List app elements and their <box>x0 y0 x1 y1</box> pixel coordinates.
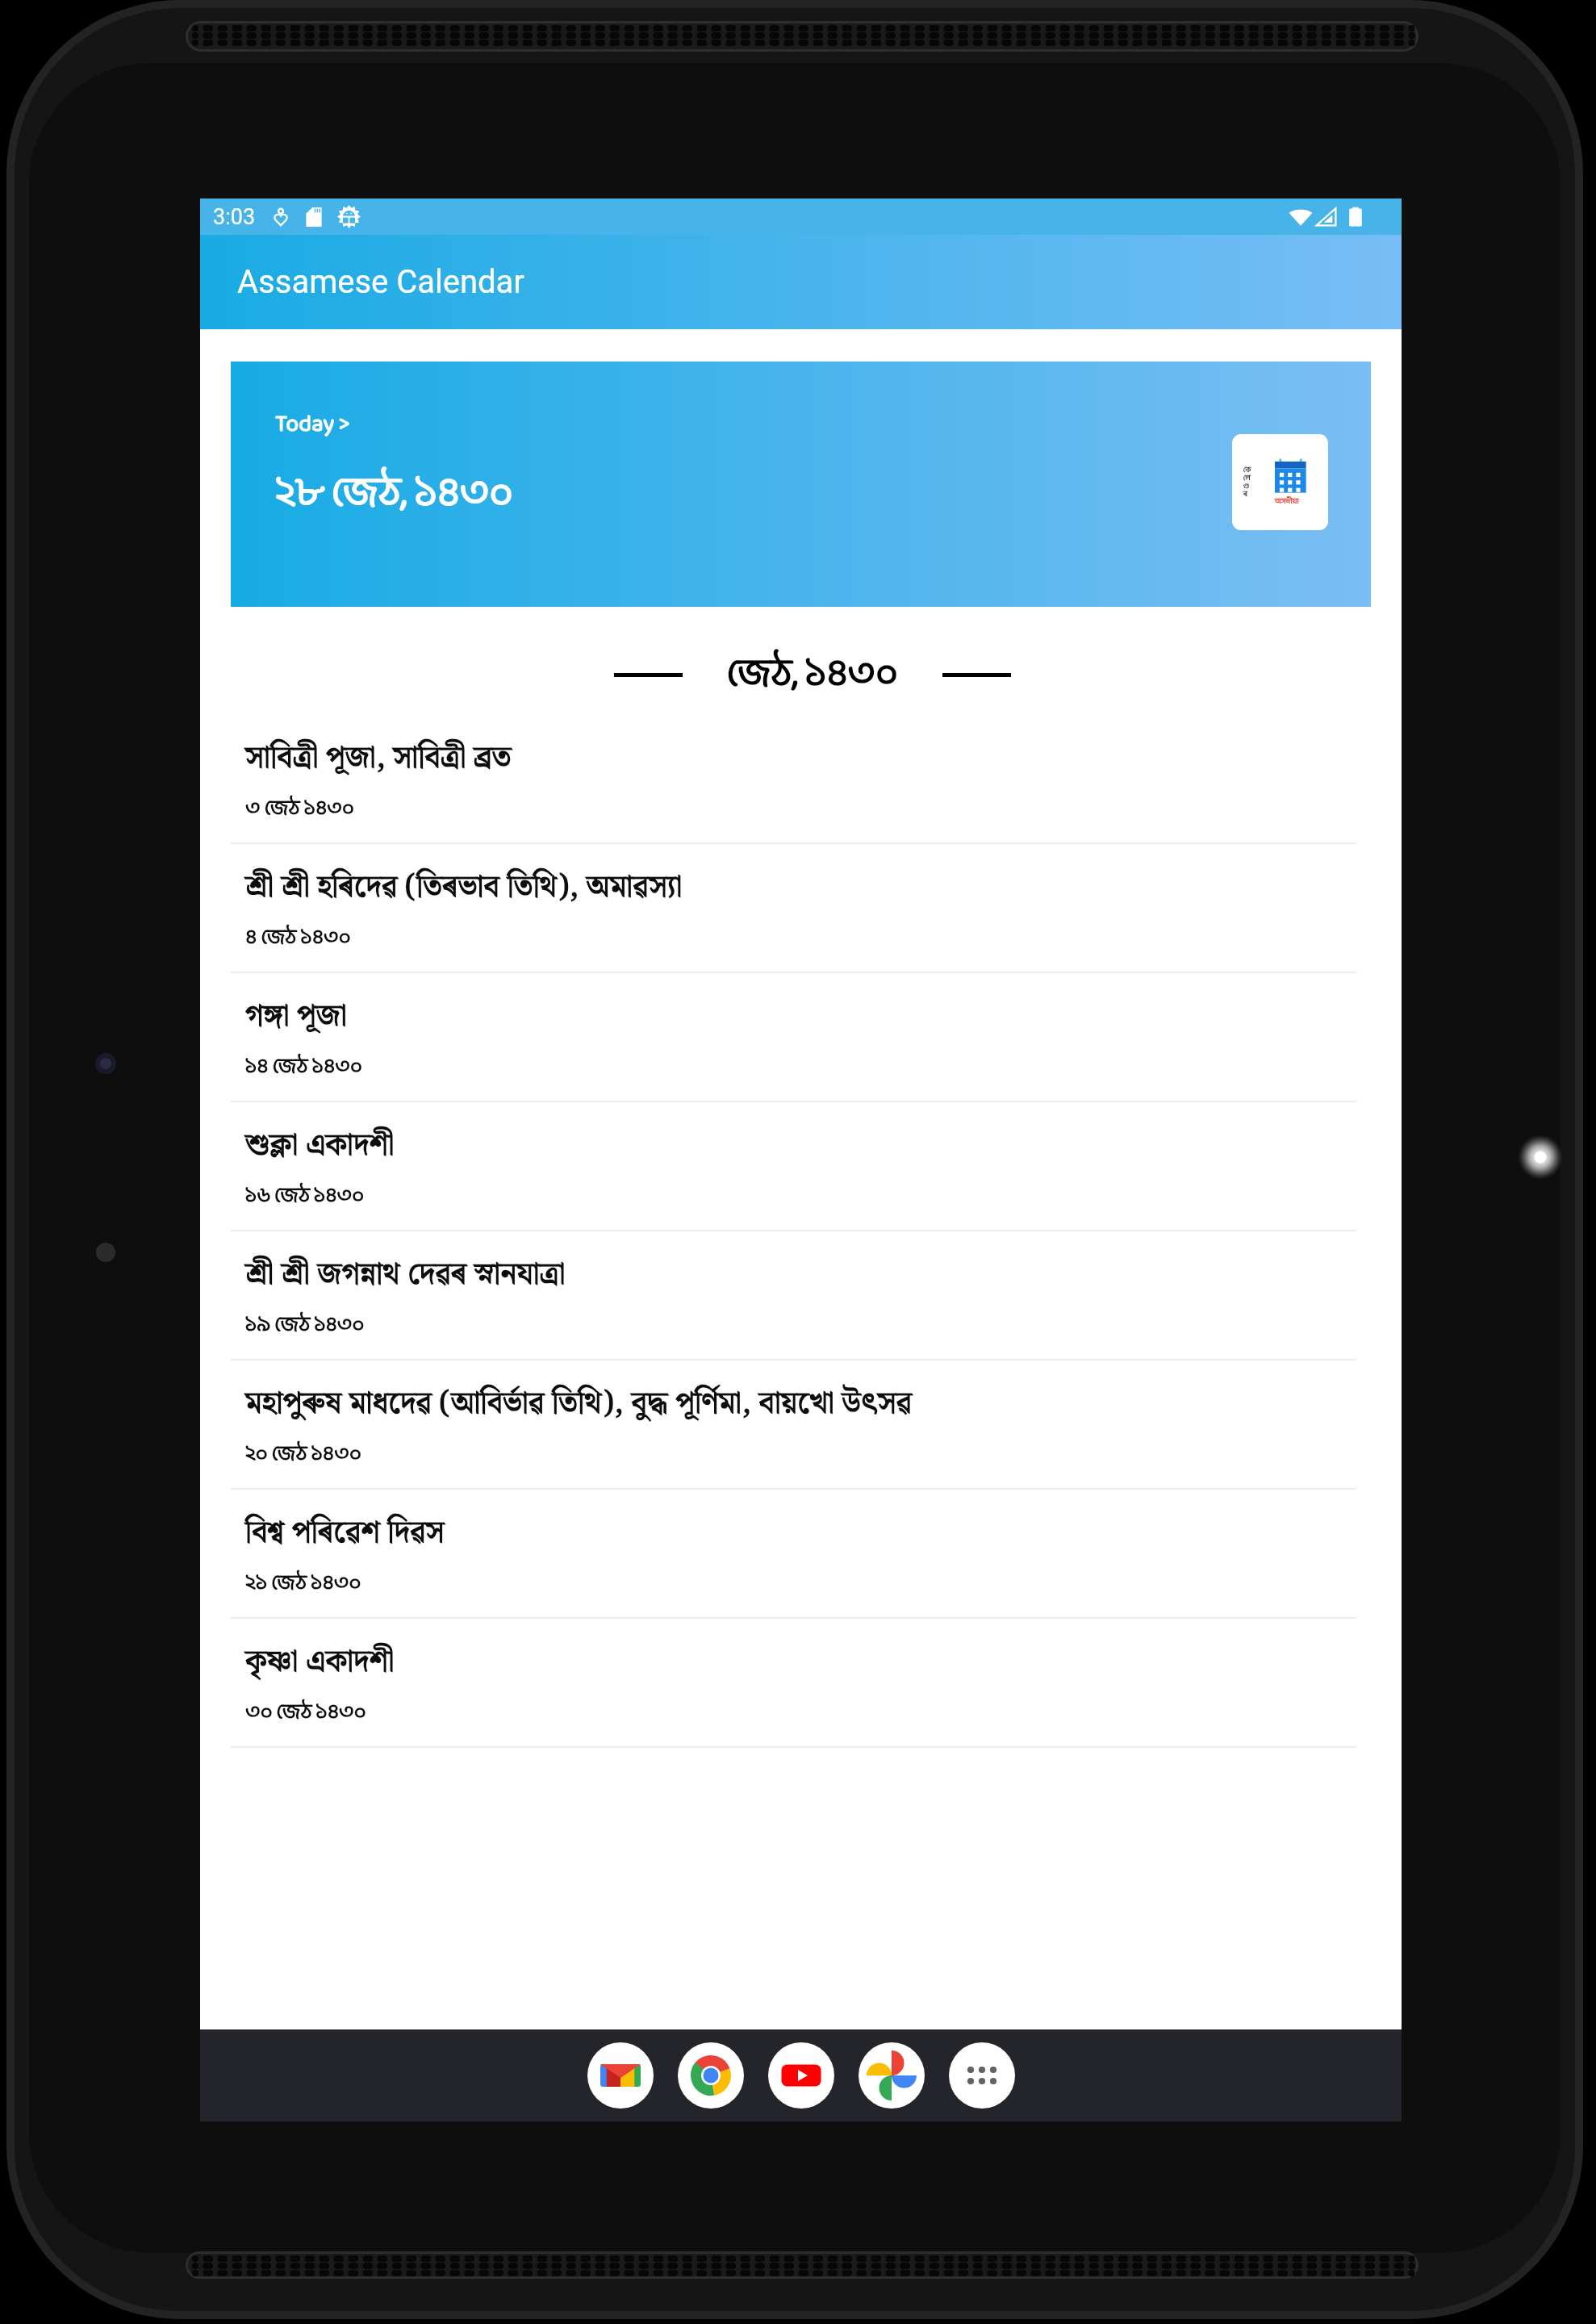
staticText: ১৬ জেঠ ১৪৩০ <box>245 1179 365 1214</box>
staticText: ২৮ জেঠ, ১৪৩০ <box>275 460 513 529</box>
staticText: গঙ্গা পূজা <box>245 993 347 1042</box>
staticText: মহাপুৰুষ মাধদেৱ (আবিৰ্ভাৱ তিথি), বুদ্ধ প… <box>245 1380 913 1429</box>
staticText: বিশ্ব পৰিৱেশ দিৱস <box>245 1509 445 1558</box>
button[interactable]: কৃষ্ণা একাদশী <box>200 1619 1402 1748</box>
button[interactable]: গঙ্গা পূজা <box>200 973 1402 1102</box>
staticText: অসমীয়া <box>1275 495 1299 508</box>
button[interactable]: সাবিত্ৰী পূজা, সাবিত্ৰী ব্ৰত <box>200 715 1402 844</box>
staticText: ১৯ জেঠ ১৪৩০ <box>245 1308 365 1344</box>
staticText: ১৪ জেঠ ১৪৩০ <box>245 1050 362 1085</box>
staticText: শ্ৰী শ্ৰী জগন্নাথ দেৱৰ স্নানযাত্ৰা <box>245 1251 566 1300</box>
staticText: ৩০ জেঠ ১৪৩০ <box>245 1695 366 1731</box>
staticText: সাবিত্ৰী পূজা, সাবিত্ৰী ব্ৰত <box>245 734 512 784</box>
button[interactable]: Google Photos <box>859 2042 925 2109</box>
staticText: শুক্লা একাদশী <box>245 1122 395 1171</box>
button[interactable]: Today > <box>231 362 1371 607</box>
button[interactable]: শ্ৰী শ্ৰী জগন্নাথ দেৱৰ স্নানযাত্ৰা <box>200 1231 1402 1361</box>
staticText: জেঠ, ১৪৩০ <box>727 642 898 708</box>
button[interactable]: Gmail <box>587 2042 654 2109</box>
staticText: ২১ জেঠ ১৪৩০ <box>245 1566 361 1602</box>
button[interactable]: শ্ৰী শ্ৰী হৰিদেৱ (তিৰভাব তিথি), অমাৱস্যা <box>200 844 1402 973</box>
button[interactable]: বিশ্ব পৰিৱেশ দিৱস <box>200 1490 1402 1619</box>
button[interactable]: শুক্লা একাদশী <box>200 1102 1402 1231</box>
staticText: Today > <box>275 405 350 445</box>
staticText: শ্ৰী শ্ৰী হৰিদেৱ (তিৰভাব তিথি), অমাৱস্যা <box>245 863 683 913</box>
staticText: ৩ জেঠ ১৪৩০ <box>245 792 354 827</box>
staticText: 3:03 <box>213 204 256 230</box>
staticText: Assamese Calendar <box>237 263 524 301</box>
staticText: ২০ জেঠ ১৪৩০ <box>245 1437 361 1473</box>
button[interactable]: YouTube <box>768 2042 834 2109</box>
button[interactable]: Chrome <box>678 2042 744 2109</box>
staticText: কে লে ণ্ড ৰ <box>1243 464 1251 500</box>
button[interactable]: মহাপুৰুষ মাধদেৱ (আবিৰ্ভাৱ তিথি), বুদ্ধ প… <box>200 1361 1402 1490</box>
staticText: কৃষ্ণা একাদশী <box>245 1638 395 1687</box>
button[interactable]: All apps <box>949 2042 1015 2109</box>
staticText: ৪ জেঠ ১৪৩০ <box>245 921 351 956</box>
